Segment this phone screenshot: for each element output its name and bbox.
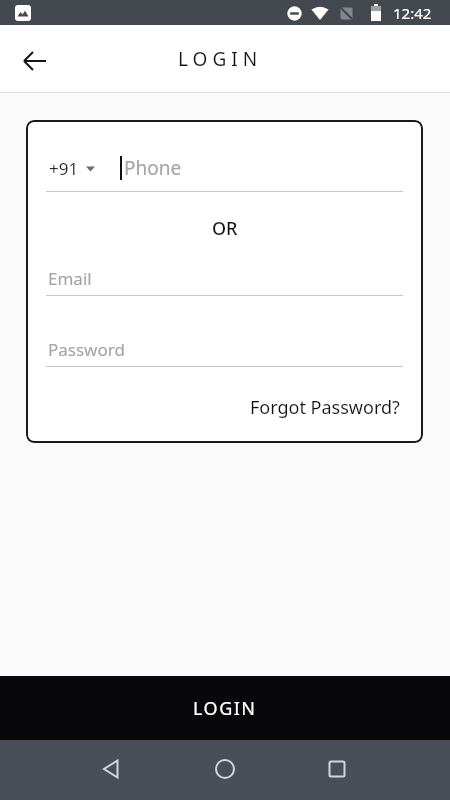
staticText: LOGIN <box>193 696 257 721</box>
staticText: Password <box>48 338 125 361</box>
staticText: Forgot Password? <box>250 395 400 420</box>
button[interactable]: Email <box>48 267 92 290</box>
button[interactable]: Password <box>48 338 125 361</box>
button[interactable] <box>12 39 58 85</box>
staticText: Phone <box>124 155 182 181</box>
button[interactable]: Phone <box>120 155 182 181</box>
staticText: LOGIN <box>178 46 263 72</box>
staticText: +91 <box>49 157 79 180</box>
staticText: Email <box>48 267 92 290</box>
button[interactable] <box>201 745 249 793</box>
button[interactable] <box>88 745 136 793</box>
staticText: 12:42 <box>393 3 432 23</box>
button[interactable] <box>313 745 361 793</box>
button[interactable]: Forgot Password? <box>250 395 400 420</box>
button[interactable]: +91 <box>49 157 95 180</box>
staticText: OR <box>212 216 238 241</box>
button[interactable]: LOGIN <box>0 676 450 740</box>
